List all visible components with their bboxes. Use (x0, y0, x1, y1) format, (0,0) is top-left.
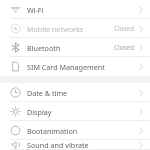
staticText: Date & time (27, 88, 139, 98)
staticText: Sound and vibrate (27, 140, 139, 150)
button[interactable]: Sound and vibrate (0, 140, 150, 150)
button[interactable]: Wi-Fi (0, 0, 150, 19)
button[interactable]: Bootanimation (0, 121, 150, 140)
staticText: Display (27, 107, 139, 117)
staticText: Closed (114, 24, 135, 33)
staticText: SIM Card Management (27, 62, 139, 72)
button[interactable]: SIM Card Management (0, 57, 150, 76)
staticText: Mobile networks (27, 24, 114, 34)
button[interactable]: Display (0, 102, 150, 121)
staticText: Bluetooth (27, 43, 114, 53)
button[interactable]: Date & time (0, 83, 150, 102)
staticText: Closed (114, 43, 135, 52)
button[interactable]: Mobile networks (0, 19, 150, 38)
button[interactable]: Bluetooth (0, 38, 150, 57)
staticText: Wi-Fi (27, 5, 139, 15)
staticText: Bootanimation (27, 126, 139, 136)
